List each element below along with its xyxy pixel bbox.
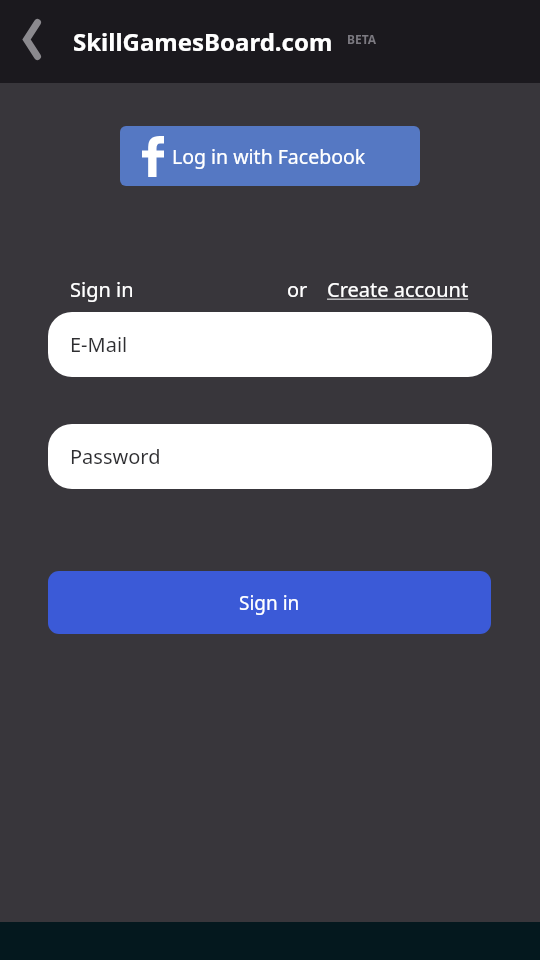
button[interactable] bbox=[0, 0, 64, 83]
staticText: E-Mail bbox=[70, 331, 128, 358]
button[interactable]: Log in with Facebook bbox=[120, 126, 420, 186]
staticText: Sign in bbox=[239, 590, 300, 616]
staticText: BETA bbox=[347, 31, 377, 47]
staticText: or bbox=[287, 276, 308, 302]
button[interactable]: E-Mail bbox=[48, 312, 492, 377]
staticText: SkillGamesBoard.com bbox=[73, 25, 333, 58]
button[interactable]: Sign in bbox=[48, 571, 491, 634]
button[interactable]: Create account bbox=[327, 276, 469, 302]
staticText: Log in with Facebook bbox=[172, 143, 366, 170]
staticText: Sign in bbox=[70, 276, 134, 302]
button[interactable]: Password bbox=[48, 424, 492, 489]
staticText: Password bbox=[70, 443, 161, 470]
